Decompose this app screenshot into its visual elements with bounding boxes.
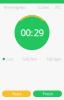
staticText: 142 bpm	[46, 56, 61, 62]
button[interactable]: 312	[54, 4, 60, 10]
staticText: Finish	[42, 91, 52, 96]
staticText: Pause	[11, 91, 21, 96]
staticText: 312	[54, 4, 60, 10]
button[interactable]: Morning Run	[3, 4, 25, 10]
staticText: 5:42 /km	[22, 56, 37, 62]
staticText: Live	[6, 56, 13, 62]
button[interactable]: Pause	[2, 90, 31, 97]
button[interactable]: 5.2 km	[37, 4, 49, 10]
staticText: 00:29	[20, 26, 43, 39]
staticText: 5.2 km	[37, 4, 49, 10]
button[interactable]: Finish	[33, 90, 62, 97]
staticText: Morning Run	[3, 4, 25, 10]
